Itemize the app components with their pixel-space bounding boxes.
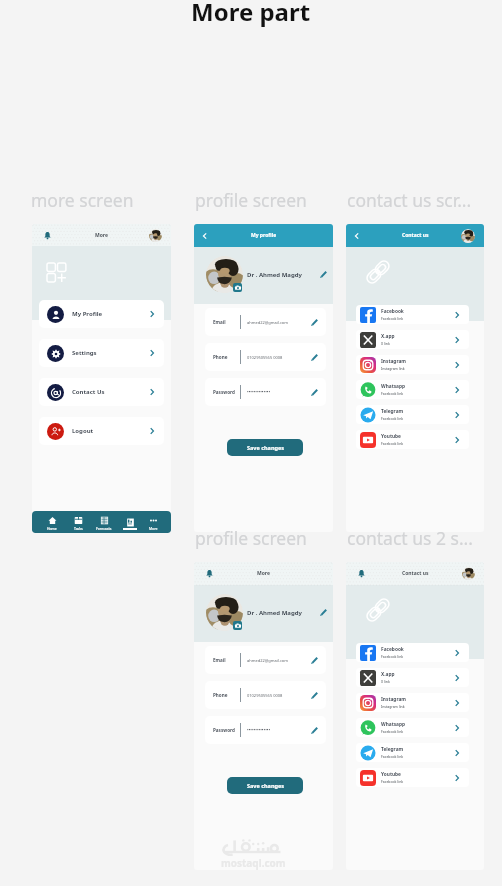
button[interactable]: Notifications (357, 569, 366, 578)
staticText: Settings (72, 349, 97, 357)
staticText: Facebook link (381, 441, 404, 446)
button[interactable]: Save changes (227, 439, 303, 456)
button[interactable]: Contact Us (39, 378, 164, 406)
staticText: contact us scr... (347, 188, 472, 212)
staticText: Tasks (74, 526, 83, 531)
staticText: More (257, 570, 270, 577)
staticText: •••••••••••••• (247, 389, 271, 395)
staticText: Facebook link (381, 779, 404, 784)
staticText: ahmed22@gmail.com (247, 320, 289, 325)
staticText: Instagram link (381, 704, 405, 709)
staticText: Home (47, 526, 57, 531)
button[interactable]: Email (205, 646, 326, 674)
button[interactable]: Profile photo (462, 567, 475, 580)
staticText: X.app (381, 671, 395, 678)
staticText: Telegram (381, 746, 404, 753)
staticText: contact us 2 s... (347, 526, 473, 550)
button[interactable]: Back (352, 231, 362, 241)
button[interactable]: Profile photo (149, 229, 162, 242)
staticText: ahmed22@gmail.com (247, 658, 289, 663)
staticText: Password (213, 727, 240, 733)
staticText: My Profile (72, 310, 103, 318)
button[interactable]: Edit name (319, 608, 328, 617)
staticText: Logout (72, 427, 94, 435)
staticText: More (149, 526, 158, 531)
button[interactable]: My Profile (39, 300, 164, 328)
button[interactable]: Profile photo (461, 229, 475, 243)
staticText: Save changes (247, 444, 284, 451)
staticText: Facebook (381, 308, 404, 315)
button[interactable]: Telegram (356, 405, 469, 424)
staticText: Facebook link (381, 654, 404, 659)
staticText: Telegram (381, 408, 404, 415)
staticText: Facebook (381, 646, 404, 653)
button[interactable]: Back (200, 231, 210, 241)
staticText: •••••••••••••• (247, 727, 271, 733)
button[interactable]: Facebook (356, 643, 469, 662)
staticText: Facebook link (381, 316, 404, 321)
button[interactable]: Whatsapp (356, 380, 469, 399)
button[interactable]: Edit name (319, 270, 328, 279)
staticText: Instagram (381, 696, 406, 703)
staticText: More part (191, 0, 311, 28)
button[interactable]: Notifications (43, 231, 52, 240)
staticText: Youtube (381, 433, 401, 440)
staticText: more screen (31, 188, 134, 212)
staticText: More (95, 232, 108, 239)
button[interactable]: X.app (356, 668, 469, 687)
button[interactable]: More (143, 513, 164, 531)
button[interactable]: Tasks (65, 513, 91, 531)
button[interactable]: Password (205, 378, 326, 406)
button[interactable]: Telegram (356, 743, 469, 762)
staticText: X link (381, 679, 390, 684)
staticText: Phone (213, 354, 240, 360)
staticText: Email (213, 319, 240, 325)
button[interactable]: Phone (205, 681, 326, 709)
button[interactable]: Forecasts (91, 513, 117, 531)
button[interactable]: Email (205, 308, 326, 336)
staticText: Phone (213, 692, 240, 698)
button[interactable] (117, 515, 143, 530)
staticText: Contact us (402, 570, 429, 577)
button[interactable]: Settings (39, 339, 164, 367)
button[interactable]: Instagram (356, 355, 469, 374)
button[interactable]: Youtube (356, 430, 469, 449)
staticText: My profile (251, 232, 277, 239)
button[interactable]: X.app (356, 330, 469, 349)
staticText: profile screen (195, 188, 307, 212)
staticText: X.app (381, 333, 395, 340)
staticText: 01029505565 0008 (247, 355, 283, 360)
staticText: 01029505565 0008 (247, 693, 283, 698)
staticText: Instagram (381, 358, 406, 365)
staticText: Youtube (381, 771, 401, 778)
staticText: mostaql.com (221, 856, 286, 870)
staticText: profile screen (195, 526, 307, 550)
button[interactable]: Save changes (227, 777, 303, 794)
staticText: Forecasts (96, 526, 112, 531)
staticText: Facebook link (381, 391, 404, 396)
button[interactable]: Notifications (205, 569, 214, 578)
button[interactable]: Change photo (233, 621, 242, 630)
button[interactable]: Change photo (233, 283, 242, 292)
staticText: Dr . Ahmed Magdy (247, 609, 302, 617)
staticText: Facebook link (381, 416, 404, 421)
button[interactable]: Instagram (356, 693, 469, 712)
button[interactable]: Phone (205, 343, 326, 371)
staticText: Facebook link (381, 729, 404, 734)
button[interactable]: Facebook (356, 305, 469, 324)
button[interactable]: Home (39, 513, 65, 531)
button[interactable]: Logout (39, 417, 164, 445)
staticText: X link (381, 341, 390, 346)
staticText: Contact Us (72, 388, 105, 396)
staticText: Dr . Ahmed Magdy (247, 271, 302, 279)
button[interactable]: Password (205, 716, 326, 744)
button[interactable]: Youtube (356, 768, 469, 787)
button[interactable]: Whatsapp (356, 718, 469, 737)
staticText: Whatsapp (381, 383, 406, 390)
staticText: Facebook link (381, 754, 404, 759)
staticText: Contact us (402, 232, 429, 239)
staticText: Password (213, 389, 240, 395)
staticText: Save changes (247, 782, 284, 789)
staticText: Instagram link (381, 366, 405, 371)
staticText: Whatsapp (381, 721, 406, 728)
